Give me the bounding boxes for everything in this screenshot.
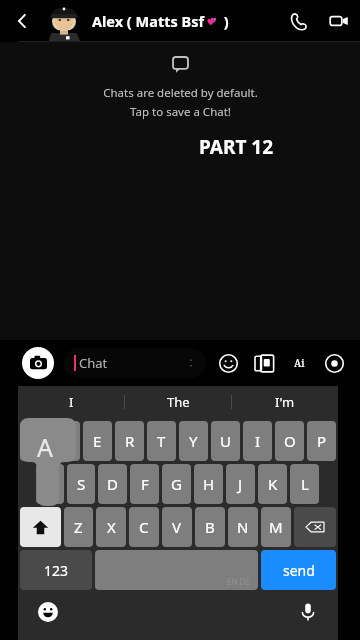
- staticText: send: [283, 561, 315, 580]
- staticText: N: [237, 517, 249, 537]
- staticText: K: [268, 474, 278, 494]
- staticText: Z: [74, 517, 83, 537]
- button[interactable]: Z: [64, 507, 93, 547]
- button[interactable]: D: [98, 464, 127, 504]
- staticText: Alex ( Matts Bsf: [92, 11, 205, 31]
- staticText: Chat: [79, 354, 108, 372]
- button[interactable]: [20, 421, 48, 461]
- button[interactable]: P: [307, 421, 336, 461]
- staticText: I: [255, 431, 261, 451]
- button[interactable]: Backspace: [294, 507, 336, 547]
- button[interactable]: Location: [322, 351, 346, 375]
- staticText: PART 12: [199, 134, 274, 160]
- staticText: Tap to save a Chat!: [130, 104, 231, 120]
- button[interactable]: G: [162, 464, 191, 504]
- staticText: L: [301, 474, 309, 494]
- button[interactable]: O: [275, 421, 304, 461]
- button[interactable]: F: [130, 464, 159, 504]
- button[interactable]: Back: [0, 0, 44, 42]
- button[interactable]: [36, 464, 64, 504]
- button[interactable]: H: [194, 464, 223, 504]
- staticText: I: [69, 393, 74, 411]
- button[interactable]: send: [261, 550, 336, 590]
- staticText: T: [157, 431, 166, 451]
- button[interactable]: C: [129, 507, 159, 547]
- button[interactable]: Call: [278, 0, 318, 42]
- staticText: Y: [189, 431, 198, 451]
- staticText: M: [269, 517, 283, 537]
- staticText: P: [317, 431, 327, 451]
- staticText: EN DE: [227, 576, 250, 587]
- staticText: O: [284, 431, 296, 451]
- button[interactable]: R: [115, 421, 144, 461]
- staticText: 123: [44, 561, 69, 580]
- button[interactable]: Emoji: [216, 351, 240, 375]
- staticText: Chats are deleted by default.: [103, 85, 258, 101]
- staticText: S: [77, 474, 86, 494]
- staticText: R: [125, 431, 135, 451]
- button[interactable]: Shift: [20, 507, 61, 547]
- staticText: I'm: [275, 393, 295, 411]
- button[interactable]: 123: [20, 550, 92, 590]
- button[interactable]: B: [195, 507, 225, 547]
- button[interactable]: L: [290, 464, 319, 504]
- button[interactable]: K: [258, 464, 287, 504]
- button[interactable]: I'm: [232, 386, 338, 418]
- staticText: D: [107, 474, 118, 494]
- button[interactable]: Camera: [22, 347, 54, 379]
- staticText: U: [220, 431, 231, 451]
- staticText: Ai: [294, 356, 305, 370]
- button[interactable]: J: [226, 464, 255, 504]
- staticText: F: [141, 474, 149, 494]
- button[interactable]: X: [96, 507, 126, 547]
- button[interactable]: I: [243, 421, 272, 461]
- staticText: E: [93, 431, 102, 451]
- button[interactable]: Y: [179, 421, 208, 461]
- button[interactable]: I: [18, 386, 124, 418]
- staticText: A: [37, 430, 53, 464]
- button[interactable]: Space: [95, 550, 258, 590]
- button[interactable]: V: [162, 507, 192, 547]
- staticText: ): [220, 11, 229, 31]
- button[interactable]: Emoji keyboard: [34, 598, 62, 626]
- staticText: V: [172, 517, 182, 537]
- staticText: The: [167, 393, 190, 411]
- staticText: B: [205, 517, 215, 537]
- button[interactable]: T: [147, 421, 176, 461]
- staticText: J: [238, 474, 243, 494]
- button[interactable]: Profile avatar: [44, 1, 84, 41]
- button[interactable]: N: [228, 507, 258, 547]
- button[interactable]: The: [125, 386, 231, 418]
- staticText: C: [139, 517, 149, 537]
- button[interactable]: My AI: [288, 352, 310, 374]
- button[interactable]: Chat: [64, 348, 206, 378]
- staticText: H: [203, 474, 215, 494]
- button[interactable]: Alex ( Matts Bsf: [92, 0, 278, 42]
- button[interactable]: Stickers: [252, 351, 276, 375]
- button[interactable]: U: [211, 421, 240, 461]
- button[interactable]: M: [261, 507, 291, 547]
- staticText: G: [171, 474, 182, 494]
- button[interactable]: Video call: [318, 0, 360, 42]
- button[interactable]: S: [67, 464, 95, 504]
- button[interactable]: Voice input: [294, 598, 322, 626]
- staticText: X: [107, 517, 116, 537]
- button[interactable]: [51, 421, 80, 461]
- button[interactable]: E: [83, 421, 112, 461]
